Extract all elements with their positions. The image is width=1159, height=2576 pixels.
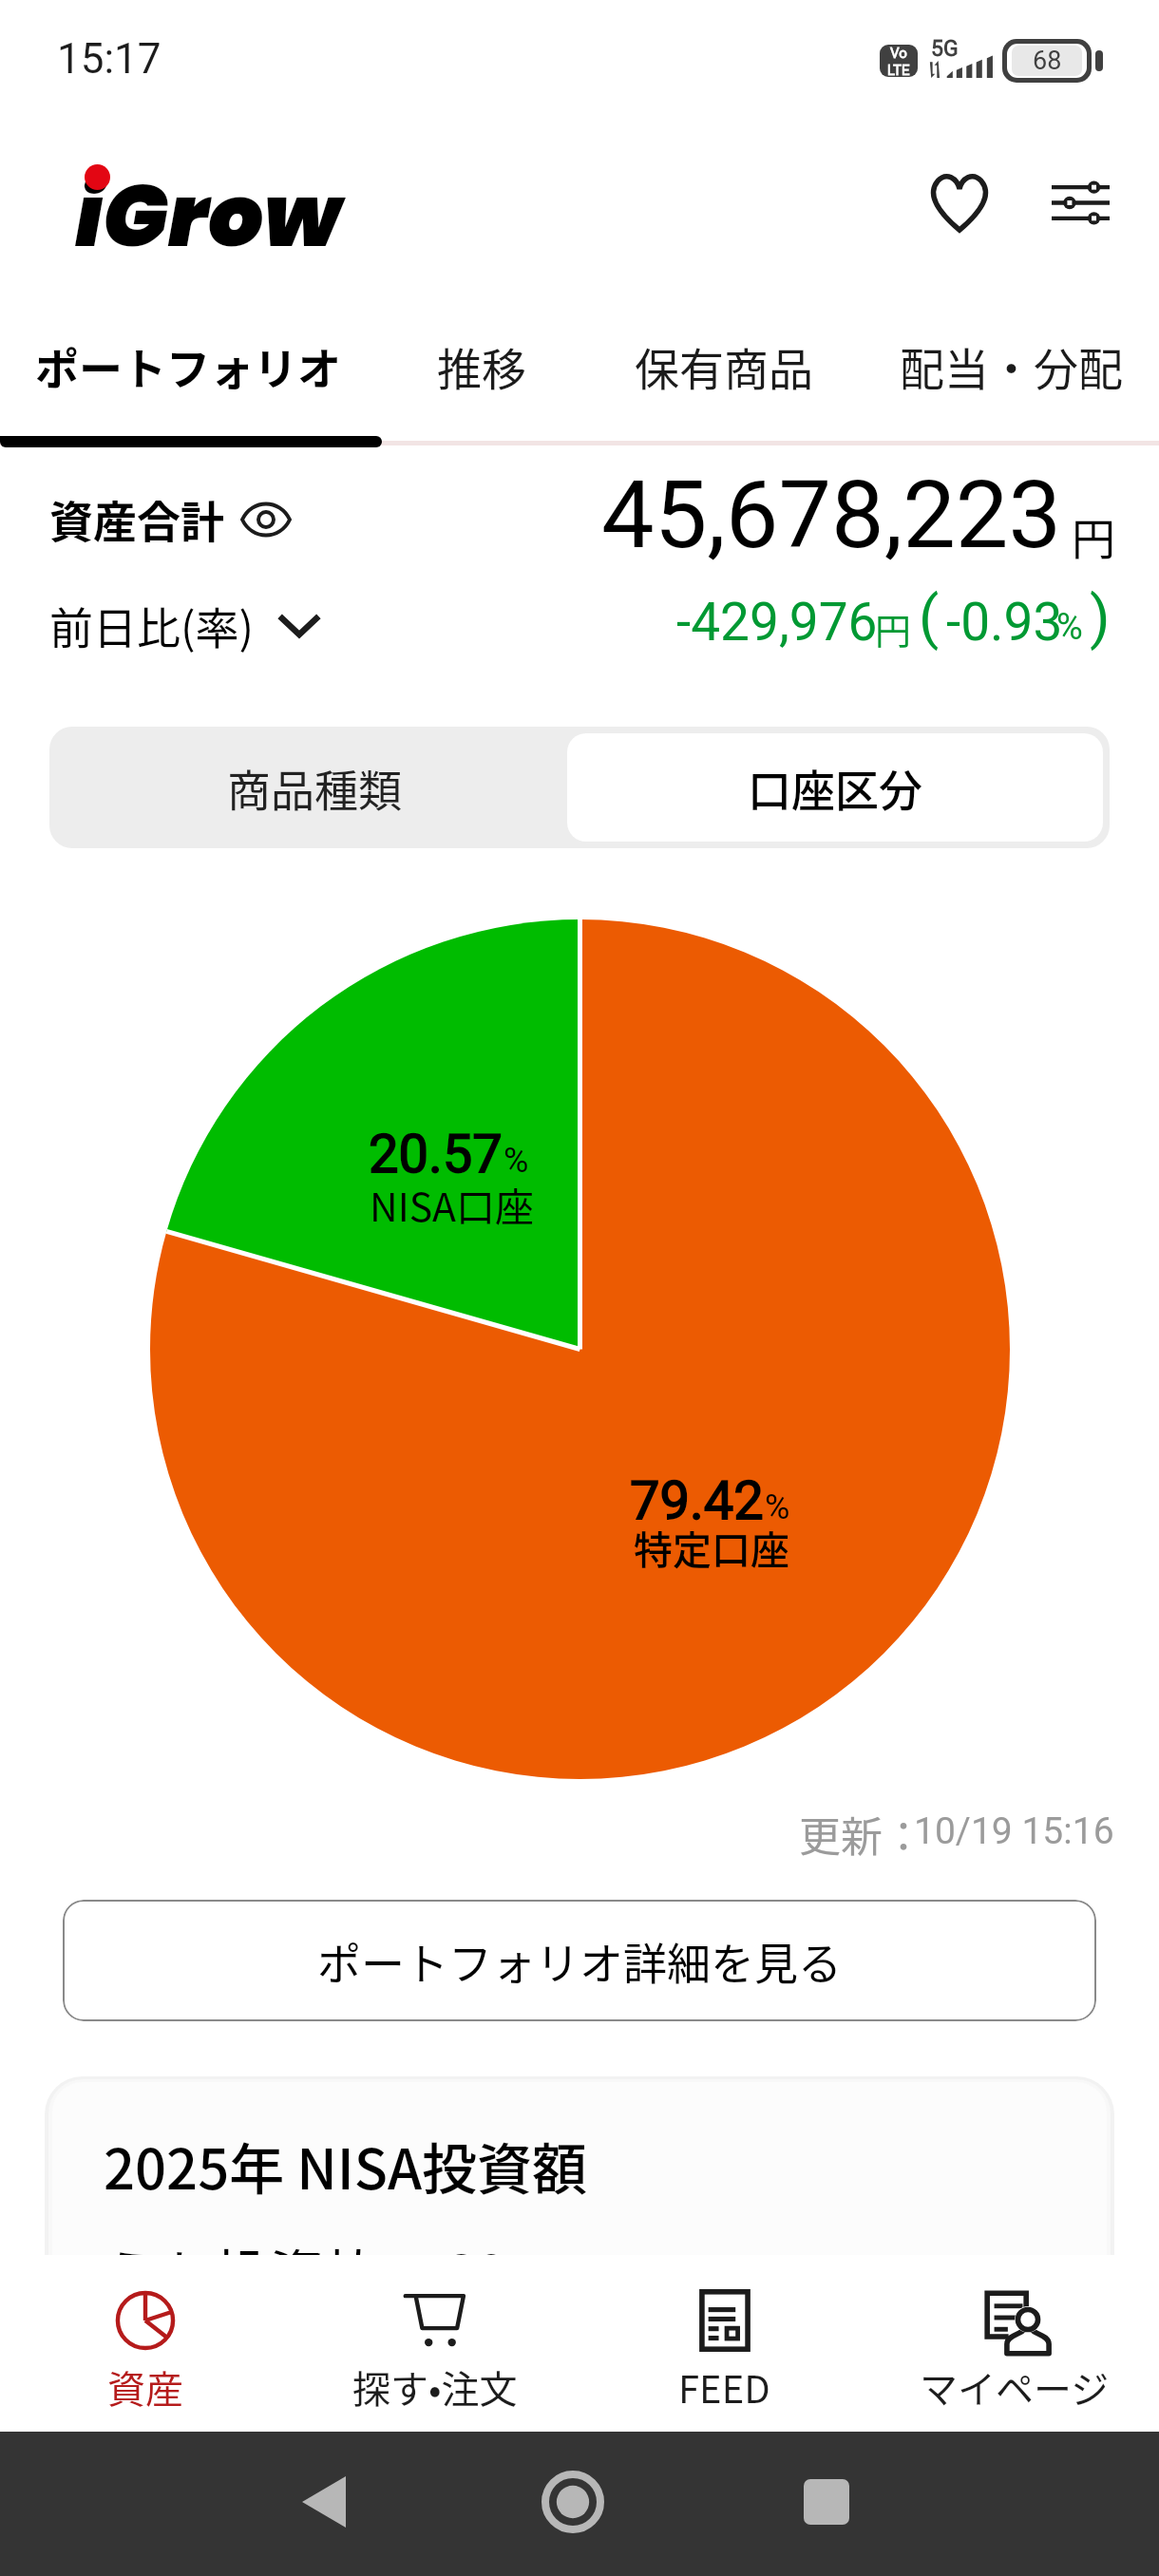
staticText: 45,678,223: [601, 460, 1062, 570]
staticText: 探す•注文: [352, 2359, 518, 2415]
staticText: NISA口座: [370, 1176, 535, 1232]
button[interactable]: Favorites: [907, 150, 1012, 255]
staticText: 15:17: [57, 34, 161, 84]
staticText: 更新：: [799, 1804, 924, 1865]
staticText: 口座区分: [748, 756, 922, 820]
staticText: %: [1056, 606, 1083, 649]
button[interactable]: 前日比(率): [49, 594, 319, 657]
staticText: 保有商品: [635, 333, 813, 398]
staticText: LTE: [887, 62, 910, 77]
staticText: 10/19 15:16: [914, 1809, 1114, 1853]
staticText: 特定口座: [634, 1519, 789, 1575]
staticText: -0.93: [946, 592, 1063, 653]
button[interactable]: 資産合計: [49, 487, 291, 551]
button[interactable]: ポートフォリオ詳細を見る: [63, 1900, 1096, 2021]
button[interactable]: 配当・分配: [887, 304, 1134, 427]
button[interactable]: Recent apps: [779, 2454, 874, 2549]
staticText: 5G: [931, 36, 959, 62]
staticText: FEED: [678, 2359, 770, 2415]
button[interactable]: 推移: [398, 304, 564, 427]
staticText: 円: [1072, 504, 1115, 568]
button[interactable]: 口座区分: [567, 733, 1103, 842]
button[interactable]: マイページ: [869, 2255, 1159, 2432]
staticText: ポートフォリオ: [35, 334, 341, 398]
staticText: マイページ: [920, 2359, 1110, 2415]
staticText: ポートフォリオ詳細を見る: [317, 1929, 842, 1993]
staticText: 前日比(率): [49, 594, 255, 657]
staticText: 推移: [437, 333, 526, 398]
staticText: 配当・分配: [900, 333, 1123, 398]
button[interactable]: 保有商品: [610, 304, 838, 427]
staticText: %: [503, 1141, 529, 1181]
staticText: 資産合計: [49, 487, 224, 551]
staticText: 資産: [107, 2359, 183, 2415]
button[interactable]: 2025年 NISA投資額: [52, 2082, 1107, 2263]
staticText: iGrow: [75, 155, 342, 275]
staticText: ): [1090, 582, 1111, 652]
staticText: 商品種類: [227, 756, 402, 820]
staticText: うち投資枠 139: [104, 2232, 508, 2263]
staticText: 円: [875, 602, 912, 654]
staticText: 68: [1033, 46, 1062, 76]
staticText: %: [765, 1487, 790, 1527]
button[interactable]: ポートフォリオ: [0, 304, 378, 427]
staticText: 79.42: [630, 1469, 764, 1532]
staticText: 2025年 NISA投資額: [104, 2126, 588, 2206]
button[interactable]: Settings: [1028, 150, 1132, 255]
staticText: -429,976: [676, 592, 878, 653]
button[interactable]: 資産: [0, 2255, 290, 2432]
button[interactable]: Back: [276, 2454, 371, 2549]
staticText: Vo: [890, 45, 907, 62]
button[interactable]: Home: [525, 2454, 620, 2549]
button[interactable]: 商品種類: [49, 727, 579, 848]
staticText: (: [919, 582, 940, 652]
button[interactable]: FEED: [579, 2255, 869, 2432]
button[interactable]: 探す•注文: [290, 2255, 579, 2432]
staticText: 20.57: [369, 1123, 503, 1185]
